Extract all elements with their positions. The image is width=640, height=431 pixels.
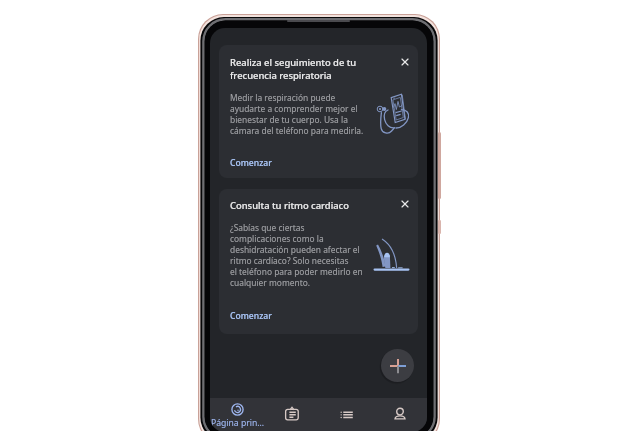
staticText: Página prin... xyxy=(211,417,265,429)
staticText: ¿Sabías que ciertas xyxy=(230,222,305,233)
button[interactable]: Página prin... xyxy=(210,398,265,431)
button[interactable]: Explorar xyxy=(319,398,373,431)
button[interactable]: Añadir xyxy=(381,349,414,382)
button[interactable]: Consulta tu ritmo cardiaco xyxy=(219,189,418,334)
staticText: bienestar de tu cuerpo. Usa la xyxy=(230,114,348,125)
staticText: el teléfono para poder medirlo en xyxy=(230,266,363,277)
staticText: ayudarte a comprender mejor el xyxy=(230,103,358,114)
button[interactable]: Realiza el seguimiento de tu xyxy=(219,45,418,178)
button[interactable]: Comenzar xyxy=(230,157,272,169)
button[interactable]: Comenzar xyxy=(230,310,272,322)
button[interactable]: Cerrar xyxy=(396,195,414,213)
staticText: complicaciones como la xyxy=(230,233,324,244)
staticText: deshidratación pueden afectar el xyxy=(230,244,360,255)
button[interactable]: Cerrar xyxy=(396,53,414,71)
staticText: cualquier momento. xyxy=(230,277,311,288)
button[interactable]: Perfil xyxy=(373,398,427,431)
staticText: frecuencia respiratoria xyxy=(230,69,332,82)
button[interactable]: Registro xyxy=(265,398,319,431)
staticText: ritmo cardíaco? Solo necesitas xyxy=(230,255,349,266)
staticText: Medir la respiración puede xyxy=(230,92,336,103)
staticText: Realiza el seguimiento de tu xyxy=(230,56,357,69)
staticText: Consulta tu ritmo cardiaco xyxy=(230,199,349,212)
staticText: cámara del teléfono para medirla. xyxy=(230,125,364,136)
